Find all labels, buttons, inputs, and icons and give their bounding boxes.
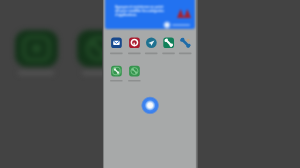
staticText: d'applications — [115, 12, 137, 16]
staticText: Appuyez et maintenez un point — [115, 4, 164, 8]
button[interactable]: Écran d'accueil — [103, 0, 198, 168]
button[interactable]: Astuce : modifier les catégories — [105, 0, 195, 29]
staticText: clé pour modifier les catégories — [115, 8, 164, 12]
